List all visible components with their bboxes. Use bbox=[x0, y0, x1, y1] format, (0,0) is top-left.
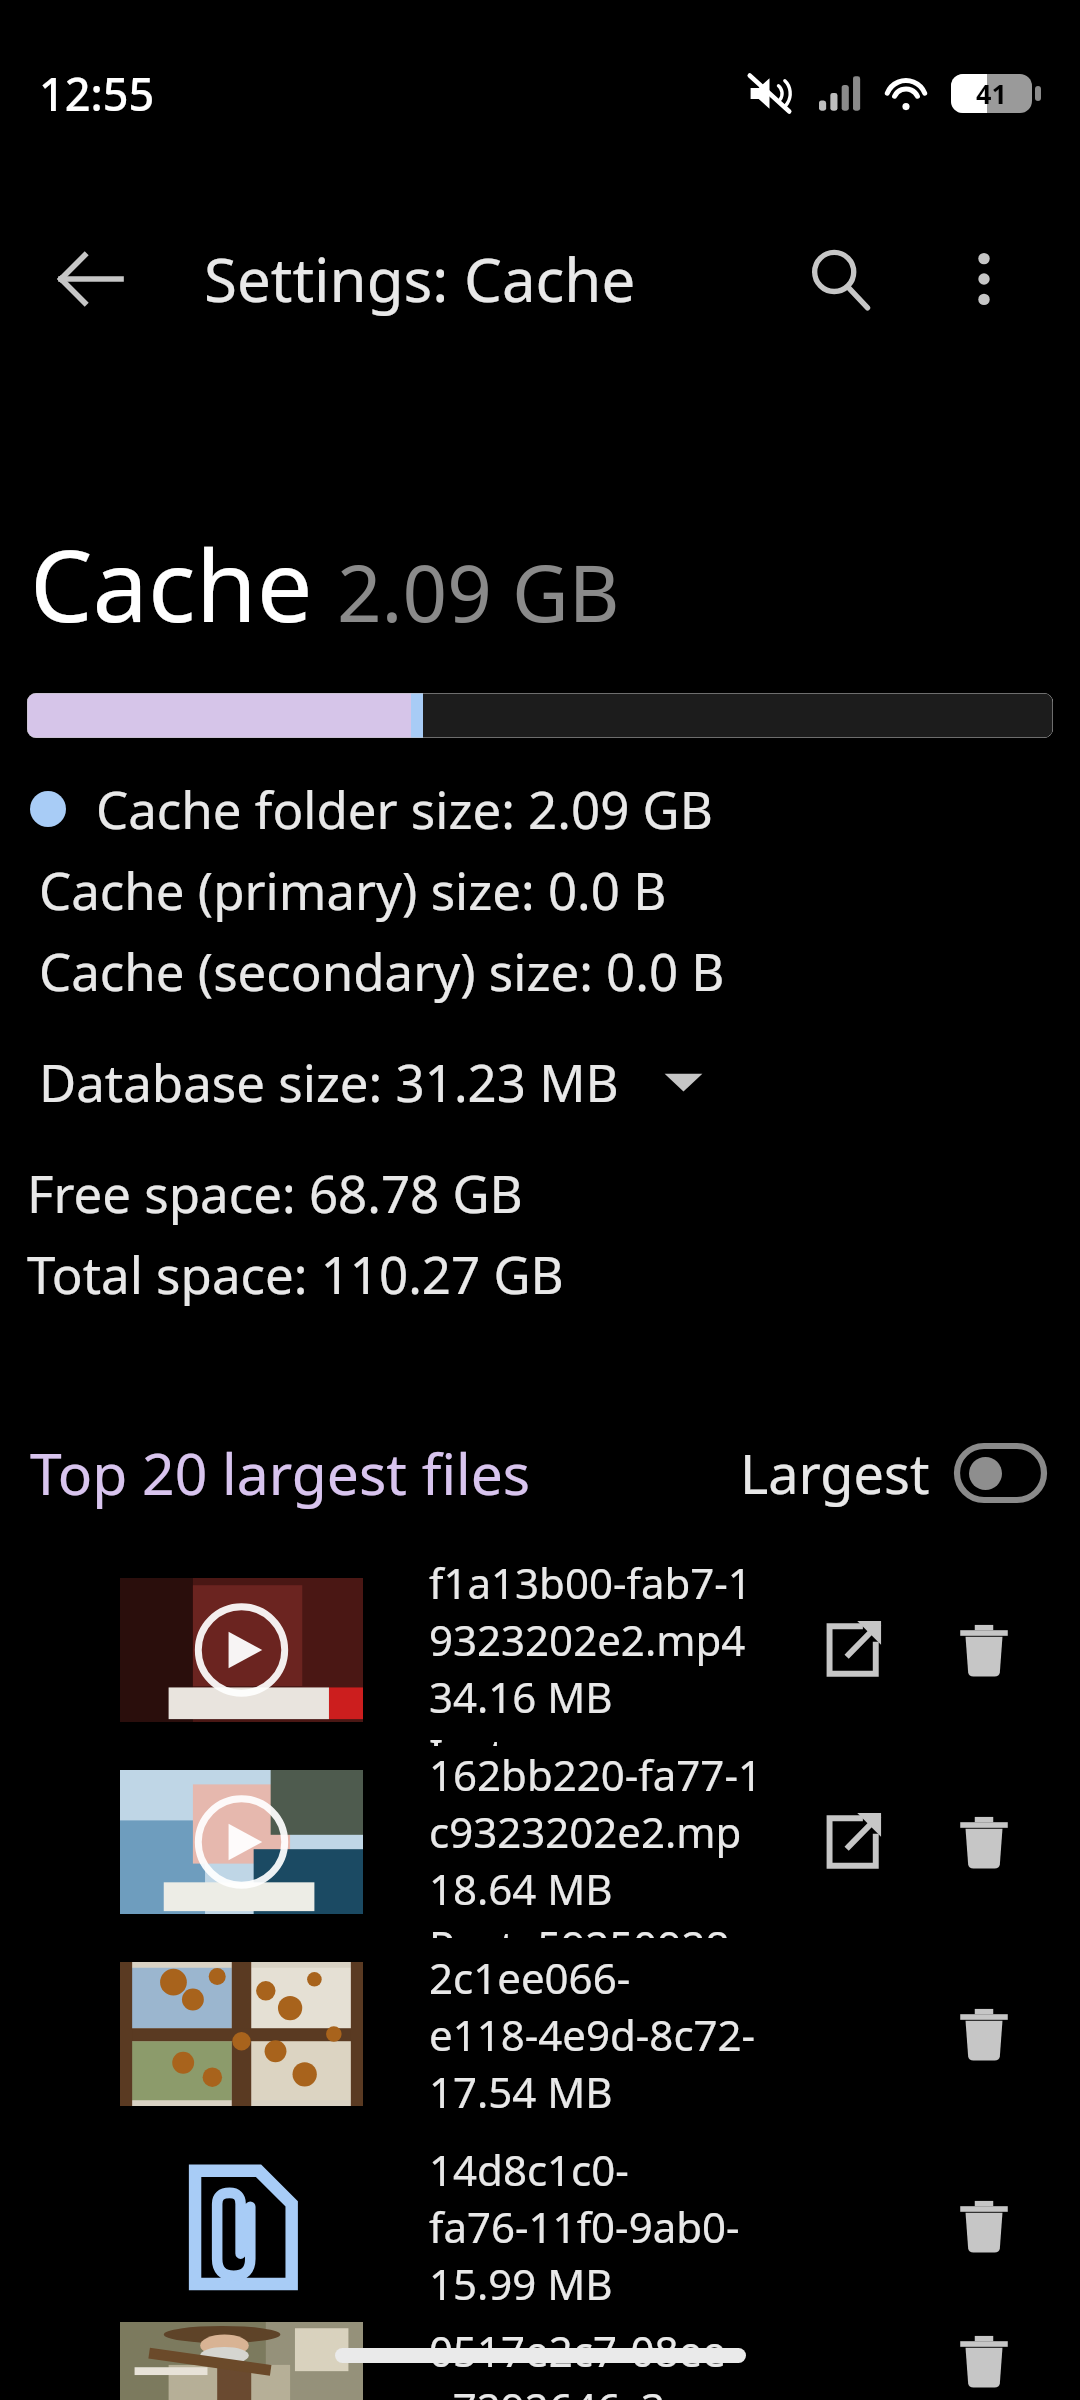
button[interactable]: Delete bbox=[918, 1968, 1050, 2100]
staticText: Post: 59250928 bbox=[429, 1917, 730, 1938]
staticText: Cache (primary) size: 0.0 B bbox=[39, 855, 667, 924]
button[interactable] bbox=[27, 693, 1053, 738]
button[interactable]: Search bbox=[768, 207, 912, 351]
staticText: Cache folder size: 2.09 GB bbox=[96, 774, 713, 843]
button[interactable]: 14d8c1c0- bbox=[0, 2130, 1080, 2322]
staticText: 162bb220-fa77-11f0-9ab0-7b bbox=[429, 1746, 762, 1803]
staticText: Database size: 31.23 MB bbox=[39, 1047, 619, 1116]
staticText: 12:55 bbox=[39, 63, 155, 124]
staticText: 18.64 MB bbox=[429, 1860, 613, 1917]
button[interactable]: Delete bbox=[918, 2160, 1050, 2292]
staticText: 2c1ee066- bbox=[429, 1949, 631, 2006]
staticText: 14d8c1c0- bbox=[429, 2141, 629, 2198]
button[interactable]: Delete bbox=[918, 2322, 1050, 2400]
button[interactable]: 2c1ee066- bbox=[0, 1938, 1080, 2130]
staticText: 34.16 MB bbox=[429, 1668, 613, 1725]
staticText: Free space: 68.78 GB bbox=[27, 1158, 523, 1227]
button[interactable]: 0517e2c7-08ee-4238-a737- bbox=[0, 2322, 1080, 2400]
staticText: 41 bbox=[976, 75, 1007, 112]
staticText: f1a13b00-fab7-11f0-9ab0-7bc bbox=[429, 1554, 762, 1611]
staticText: Total space: 110.27 GB bbox=[27, 1239, 564, 1308]
button[interactable]: Largest bbox=[740, 1436, 1044, 1510]
staticText: Settings: Cache bbox=[204, 238, 636, 320]
button[interactable]: Database size: 31.23 MB bbox=[30, 1047, 706, 1116]
button[interactable]: Open externally bbox=[786, 1776, 918, 1908]
staticText: Cache (secondary) size: 0.0 B bbox=[39, 936, 725, 1005]
button[interactable]: 162bb220-fa77-11f0-9ab0-7b bbox=[0, 1746, 1080, 1938]
button[interactable]: Open externally bbox=[786, 1584, 918, 1716]
button[interactable]: f1a13b00-fab7-11f0-9ab0-7bc bbox=[0, 1554, 1080, 1746]
button[interactable]: Delete bbox=[918, 1776, 1050, 1908]
staticText: Cache bbox=[30, 516, 313, 651]
staticText: 17.54 MB bbox=[429, 2063, 613, 2120]
button[interactable]: Back bbox=[18, 207, 162, 351]
staticText: e118-4e9d-8c72-866b70a4b869.jpg bbox=[429, 2006, 762, 2063]
staticText: 0517e2c7-08ee-4238-a737- bbox=[429, 2322, 762, 2379]
staticText: c9323202e2.mp4 bbox=[429, 1803, 762, 1860]
staticText: 15.99 MB bbox=[429, 2255, 613, 2312]
staticText: e7292646c3ae.webp bbox=[429, 2379, 762, 2400]
button[interactable]: More options bbox=[912, 207, 1056, 351]
staticText: 2.09 GB bbox=[337, 539, 620, 645]
button[interactable]: Delete bbox=[918, 1584, 1050, 1716]
staticText: Instance: lemmy.world • Comm: bbox=[429, 1725, 762, 1746]
staticText: 9323202e2.mp4 bbox=[429, 1611, 746, 1668]
staticText: Largest bbox=[740, 1436, 930, 1510]
button[interactable]: Top 20 largest files bbox=[30, 1434, 531, 1512]
staticText: fa76-11f0-9ab0-7bc9323202e2.mp4 bbox=[429, 2198, 762, 2255]
